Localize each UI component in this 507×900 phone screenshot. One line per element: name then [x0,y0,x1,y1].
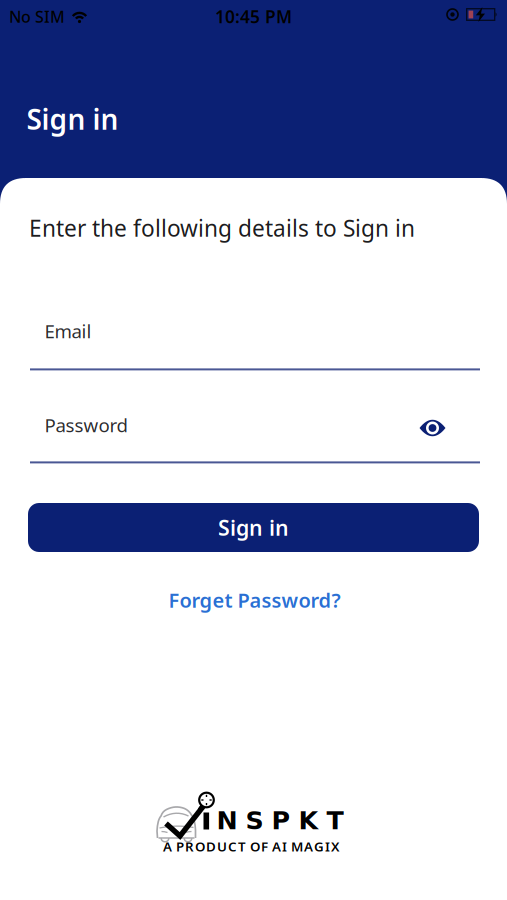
staticText: No SIM [9,6,65,27]
staticText: Sign in [26,100,118,138]
staticText: A P R O D U C T O F A I M A G I X [163,837,340,855]
button[interactable]: Forget Password? [168,587,340,613]
button[interactable]: Sign in [28,503,479,552]
button[interactable]: Email [30,319,480,370]
staticText: Email [44,319,91,343]
staticText: Sign in [218,513,289,542]
staticText: N S P K T [216,806,343,835]
staticText: 10:45 PM [215,5,292,28]
button[interactable] [419,418,446,438]
staticText: Enter the following details to Sign in [29,213,415,243]
button[interactable]: Password [30,413,480,463]
staticText: Password [44,413,127,437]
staticText: Forget Password? [168,587,340,613]
